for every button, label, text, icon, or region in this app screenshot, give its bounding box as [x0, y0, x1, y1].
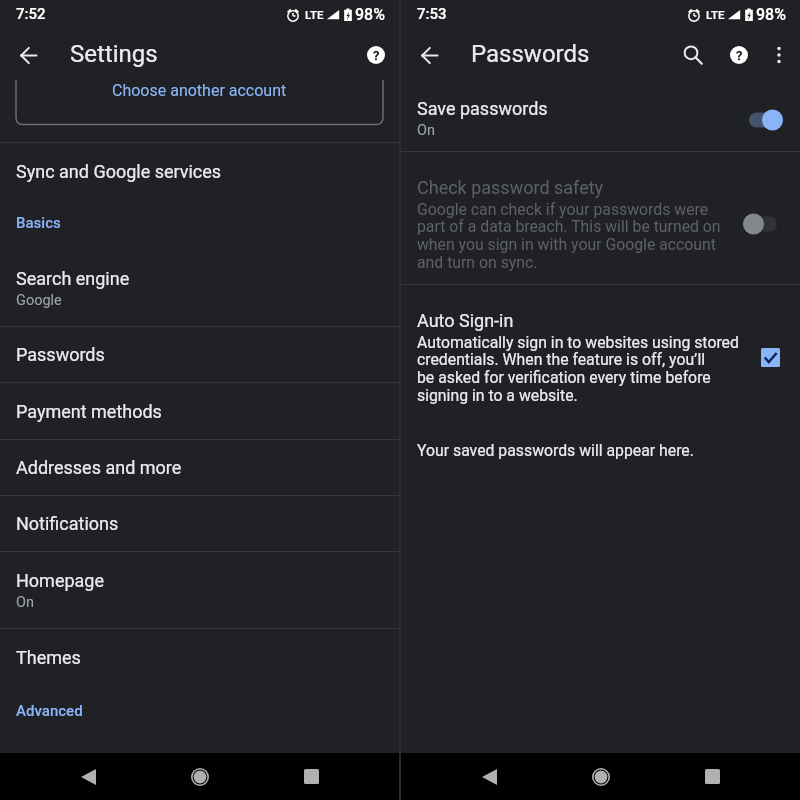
- button[interactable]: Search engine: [0, 249, 399, 328]
- staticText: Automatically sign in to websites using …: [417, 333, 739, 405]
- staticText: LTE: [305, 8, 324, 21]
- staticText: 98%: [355, 5, 385, 24]
- button[interactable]: Search: [673, 35, 713, 75]
- button[interactable]: Recent apps: [677, 753, 747, 800]
- staticText: Search engine: [16, 268, 130, 289]
- staticText: Notifications: [16, 513, 119, 534]
- staticText: Save passwords: [417, 98, 548, 119]
- button[interactable]: Navigate up: [408, 34, 450, 76]
- button[interactable]: Advanced: [0, 685, 399, 737]
- button[interactable]: Basics: [0, 198, 399, 248]
- button[interactable]: Back: [53, 753, 123, 800]
- staticText: Themes: [16, 647, 81, 668]
- staticText: LTE: [706, 8, 725, 21]
- button[interactable]: Back: [454, 753, 524, 800]
- button[interactable]: Payment methods: [0, 383, 399, 439]
- button[interactable]: Passwords: [0, 327, 399, 382]
- button[interactable]: Help: [358, 37, 394, 73]
- staticText: On: [16, 594, 34, 611]
- button[interactable]: Addresses and more: [0, 440, 399, 495]
- staticText: Basics: [16, 214, 61, 232]
- button[interactable]: Navigate up: [7, 34, 49, 76]
- staticText: Check password safety: [417, 177, 604, 198]
- staticText: ?: [373, 48, 380, 63]
- button[interactable]: Notifications: [0, 496, 399, 551]
- button[interactable]: Save passwords: [401, 80, 800, 151]
- button[interactable]: Sync and Google services: [0, 144, 399, 198]
- staticText: Auto Sign-in: [417, 310, 514, 331]
- button[interactable]: Home: [566, 753, 636, 800]
- staticText: 7:52: [16, 5, 46, 23]
- button[interactable]: More options: [761, 37, 797, 73]
- staticText: Addresses and more: [16, 457, 182, 478]
- staticText: Your saved passwords will appear here.: [417, 441, 694, 460]
- staticText: 98%: [756, 5, 786, 24]
- staticText: Sync and Google services: [16, 161, 222, 182]
- button[interactable]: Help: [719, 35, 759, 75]
- button[interactable]: Home: [165, 753, 235, 800]
- button[interactable]: Themes: [0, 629, 399, 685]
- staticText: Passwords: [471, 40, 590, 68]
- button[interactable]: Recent apps: [276, 753, 346, 800]
- button[interactable]: Homepage: [0, 552, 399, 628]
- button[interactable]: Auto Sign-in: [401, 285, 800, 440]
- staticText: 7:53: [417, 5, 447, 23]
- staticText: Google can check if your passwords were …: [417, 200, 721, 272]
- staticText: Settings: [70, 40, 158, 68]
- staticText: Passwords: [16, 344, 105, 365]
- staticText: Homepage: [16, 570, 104, 591]
- staticText: Google: [16, 292, 62, 309]
- button[interactable]: Check password safety: [401, 152, 800, 284]
- staticText: Choose another account: [112, 81, 287, 100]
- staticText: Payment methods: [16, 401, 162, 422]
- staticText: ?: [736, 48, 743, 63]
- staticText: Advanced: [16, 702, 83, 720]
- staticText: On: [417, 122, 435, 139]
